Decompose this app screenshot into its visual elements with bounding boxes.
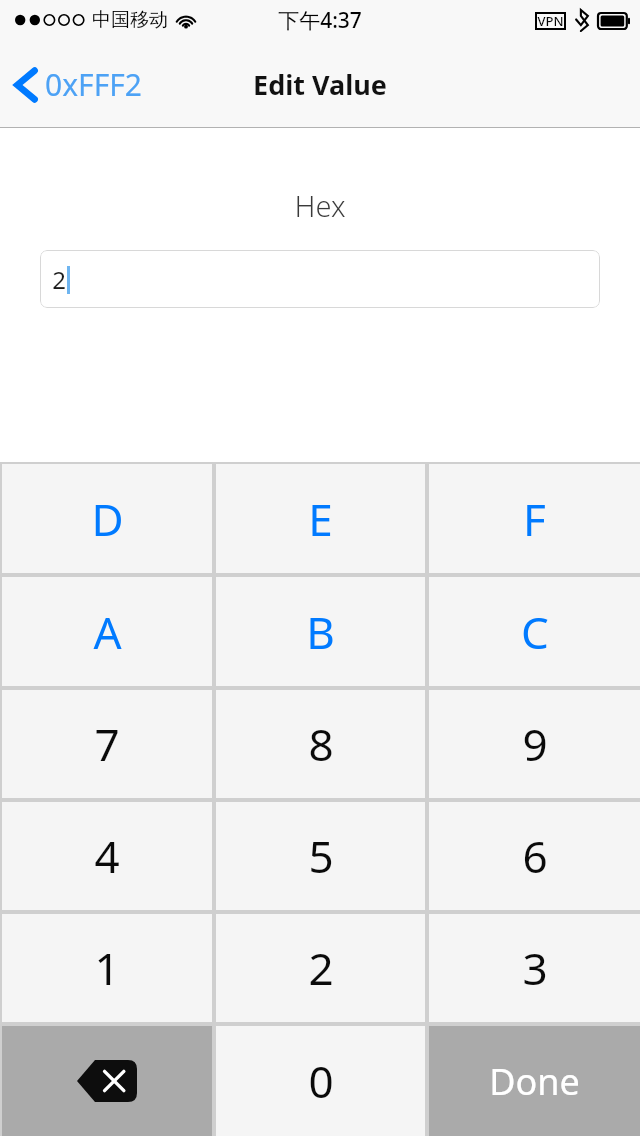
staticText: 6: [522, 826, 548, 886]
button[interactable]: C: [429, 577, 640, 686]
button[interactable]: A: [2, 577, 212, 686]
staticText: 2: [308, 938, 334, 998]
button[interactable]: 2: [216, 914, 425, 1022]
button[interactable]: Backspace: [2, 1026, 212, 1136]
button[interactable]: 2: [40, 250, 600, 308]
staticText: C: [521, 602, 549, 662]
staticText: Done: [489, 1057, 580, 1106]
staticText: 0: [308, 1051, 334, 1111]
staticText: 下午4:37: [278, 6, 362, 35]
button[interactable]: 7: [2, 690, 212, 798]
staticText: 7: [94, 714, 120, 774]
staticText: 5: [308, 826, 334, 886]
staticText: 4: [94, 826, 120, 886]
button[interactable]: 8: [216, 690, 425, 798]
staticText: E: [308, 489, 333, 549]
button[interactable]: Done: [429, 1026, 640, 1136]
staticText: B: [306, 602, 335, 662]
staticText: 2: [52, 263, 66, 296]
staticText: 1: [94, 938, 120, 998]
staticText: Edit Value: [253, 66, 387, 103]
button[interactable]: 1: [2, 914, 212, 1022]
staticText: VPN: [537, 12, 564, 30]
staticText: Hex: [294, 186, 346, 225]
button[interactable]: 4: [2, 802, 212, 910]
button[interactable]: F: [429, 464, 640, 573]
button[interactable]: E: [216, 464, 425, 573]
staticText: F: [523, 489, 546, 549]
staticText: 0xFFF2: [45, 64, 142, 105]
staticText: 3: [522, 938, 548, 998]
button[interactable]: 5: [216, 802, 425, 910]
staticText: 9: [522, 714, 548, 774]
button[interactable]: B: [216, 577, 425, 686]
staticText: D: [91, 489, 124, 549]
button[interactable]: 0: [216, 1026, 425, 1136]
staticText: A: [93, 602, 122, 662]
button[interactable]: 3: [429, 914, 640, 1022]
staticText: 8: [308, 714, 334, 774]
button[interactable]: 9: [429, 690, 640, 798]
button[interactable]: D: [2, 464, 212, 573]
button[interactable]: 0xFFF2: [0, 58, 152, 111]
staticText: 中国移动: [92, 8, 168, 32]
button[interactable]: 6: [429, 802, 640, 910]
